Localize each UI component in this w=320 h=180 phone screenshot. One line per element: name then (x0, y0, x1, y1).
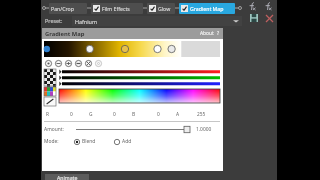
staticText: Amount: (44, 126, 64, 133)
button[interactable]: Gradient Map (179, 3, 235, 14)
button[interactable]: Blend (74, 137, 96, 146)
staticText: G (89, 111, 93, 118)
staticText: Hafnium (75, 18, 97, 25)
staticText: Gradient Map (190, 5, 224, 12)
button[interactable]: Gradient tool 5 (84, 59, 92, 67)
staticText: Pan/Crop (51, 5, 74, 12)
button[interactable]: Hafnium (72, 16, 242, 26)
staticText: About (200, 30, 214, 37)
button[interactable]: Remove effect (264, 13, 274, 23)
button[interactable] (59, 81, 220, 86)
button[interactable]: Save preset (249, 13, 259, 23)
staticText: A (176, 111, 180, 118)
staticText: Film Effects (102, 5, 130, 12)
button[interactable]: Pan/Crop (49, 3, 87, 14)
staticText: Gradient Map (45, 30, 85, 38)
staticText: Glow (158, 5, 171, 12)
button[interactable]: Gradient tool 3 (64, 59, 72, 67)
staticText: Blend (82, 138, 96, 145)
staticText: Mode: (44, 138, 59, 145)
button[interactable] (74, 125, 193, 134)
button[interactable]: Current color swatch (44, 69, 56, 86)
staticText: 0 (113, 111, 116, 118)
staticText: 1.0000 (196, 126, 212, 133)
staticText: 0 (157, 111, 160, 118)
staticText: 255 (197, 111, 206, 118)
button[interactable]: Gradient Map (42, 28, 223, 39)
button[interactable]: Animate (45, 174, 89, 180)
button[interactable]: Gradient tool 2 (54, 59, 62, 67)
staticText: Add (122, 138, 132, 145)
button[interactable]: Palette (44, 87, 56, 96)
button[interactable]: Effect settings (263, 1, 273, 11)
button[interactable]: Gradient tool 4 (74, 59, 82, 67)
button[interactable] (44, 41, 220, 57)
button[interactable]: Effect settings (247, 1, 257, 11)
staticText: ? (217, 30, 220, 37)
button[interactable]: Eyedropper (44, 97, 56, 106)
staticText: R (46, 111, 49, 118)
staticText: Preset: (45, 17, 63, 24)
button[interactable] (59, 69, 220, 74)
button[interactable]: Gradient tool 1 (44, 59, 52, 67)
button[interactable]: Add (114, 137, 132, 146)
button[interactable] (59, 75, 220, 80)
button[interactable]: Film Effects (91, 3, 143, 14)
staticText: Animate (57, 174, 78, 180)
staticText: B (132, 111, 136, 118)
button[interactable]: Gradient tool 6 (94, 59, 102, 67)
staticText: 0 (70, 111, 73, 118)
button[interactable]: Glow (147, 3, 175, 14)
